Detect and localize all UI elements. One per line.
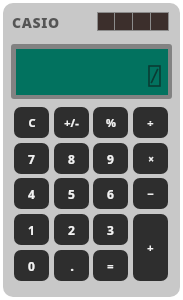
staticText: + [147,240,154,255]
staticText: − [147,186,154,201]
staticText: % [106,115,116,130]
staticText: 8 [68,151,75,167]
button[interactable]: 5 [54,178,89,209]
staticText: × [148,152,154,166]
button[interactable]: % [93,107,128,138]
button[interactable]: 7 [14,143,49,174]
staticText: 7 [28,151,35,167]
button[interactable]: 9 [93,143,128,174]
staticText: +/- [64,115,79,130]
staticText: = [107,258,114,273]
staticText: 4 [28,186,35,202]
button[interactable]: 0 [14,250,49,281]
button[interactable]: 3 [93,214,128,245]
staticText: 5 [68,186,75,202]
staticText: ÷ [147,115,154,130]
staticText: 3 [107,222,114,238]
button[interactable]: 6 [93,178,128,209]
button[interactable]: 8 [54,143,89,174]
staticText: C [28,115,36,130]
button[interactable]: 4 [14,178,49,209]
staticText: . [70,257,74,275]
button[interactable]: = [93,250,128,281]
staticText: CASIO [12,13,60,31]
staticText: 1 [28,222,35,238]
staticText: 2 [68,222,75,238]
staticText: 6 [107,186,114,202]
button[interactable]: 1 [14,214,49,245]
button[interactable]: +/- [54,107,89,138]
button[interactable]: + [133,214,168,281]
button[interactable]: × [133,143,168,174]
button[interactable]: C [14,107,49,138]
staticText: 0 [28,258,35,274]
staticText: 9 [107,151,114,167]
button[interactable]: − [133,178,168,209]
button[interactable]: 2 [54,214,89,245]
button[interactable]: ÷ [133,107,168,138]
button[interactable]: . [54,250,89,281]
